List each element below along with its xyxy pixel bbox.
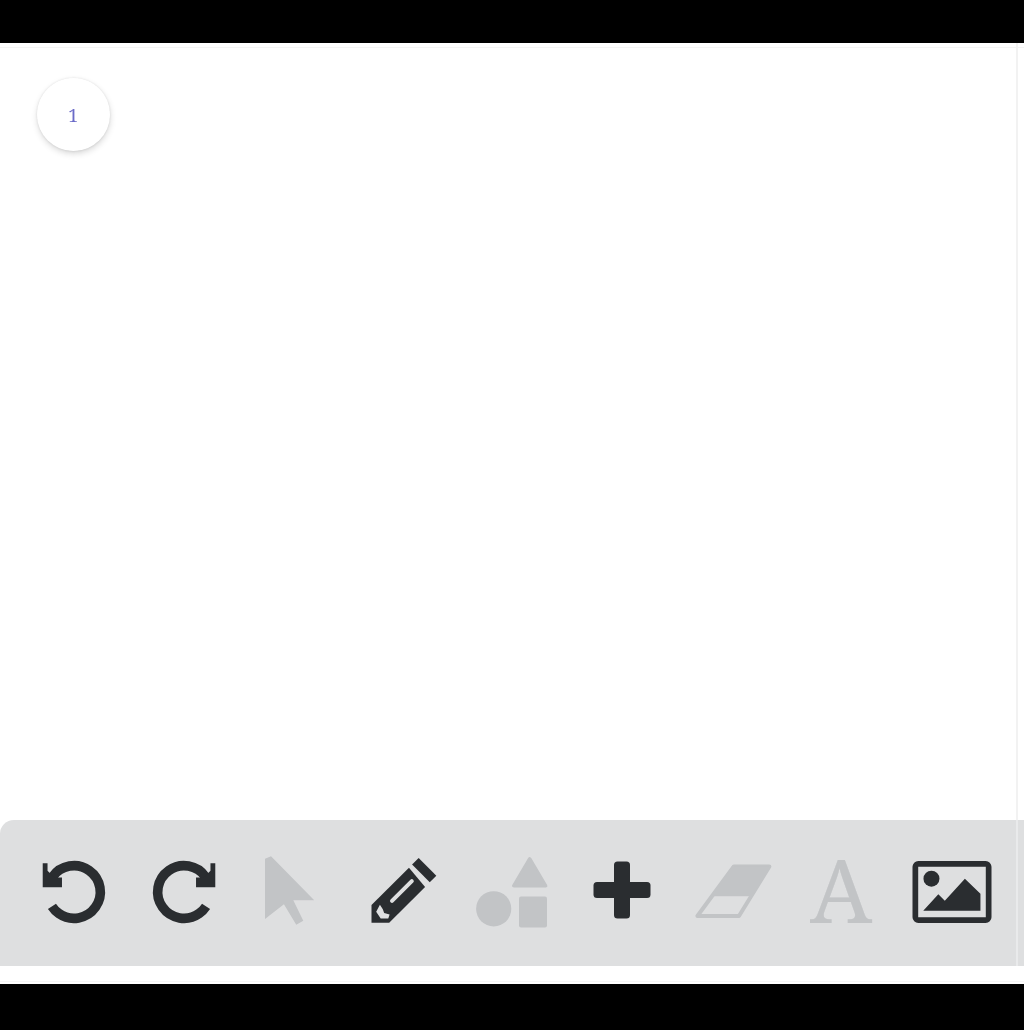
button[interactable]: Eraser [687,844,783,940]
staticText: 1 [68,102,79,127]
button[interactable]: Redo [136,844,232,940]
button[interactable]: Page 1 [37,78,110,151]
staticText: A [810,829,873,925]
button[interactable]: A [793,844,889,940]
button[interactable]: Undo [26,844,122,940]
button[interactable]: Add [574,844,670,940]
button[interactable]: Select [242,844,338,940]
button[interactable]: Draw [353,844,449,940]
button[interactable]: Shapes [465,844,561,940]
button[interactable]: Image [904,844,1000,940]
